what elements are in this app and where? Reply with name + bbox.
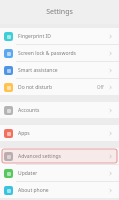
other: Open [108,108,113,113]
button[interactable]: Screen lock & passwords [0,45,119,61]
button[interactable]: Apps [0,125,119,141]
staticText: Off [97,84,104,90]
button[interactable]: Updater [0,165,119,181]
staticText: Accounts [18,107,108,114]
button[interactable]: Do not disturb [0,79,119,95]
staticText: Fingerprint ID [18,33,108,40]
other: Open [108,68,113,73]
button[interactable]: Accounts [0,102,119,118]
button[interactable]: About phone [0,182,119,198]
other: Open [108,85,113,90]
button[interactable]: Advanced settings [0,148,119,164]
other: Open [108,171,113,176]
staticText: Settings [46,7,73,17]
other: Open [108,154,113,159]
staticText: Advanced settings [18,153,108,160]
staticText: Apps [18,130,108,137]
other: Open [108,51,113,56]
button[interactable]: Fingerprint ID [0,28,119,44]
staticText: Screen lock & passwords [18,50,108,57]
other: Open [108,34,113,39]
other: Open [108,131,113,136]
staticText: Smart assistance [18,67,108,74]
other: Open [108,188,113,193]
button[interactable]: Smart assistance [0,62,119,78]
staticText: Updater [18,170,108,177]
staticText: Do not disturb [18,84,97,91]
staticText: About phone [18,187,108,194]
